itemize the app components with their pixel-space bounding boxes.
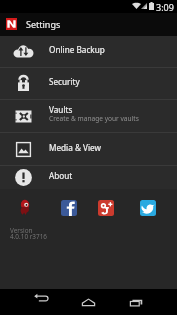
staticText: Security (49, 76, 80, 87)
staticText: Version (10, 226, 33, 235)
staticText: Settings (26, 18, 61, 30)
button[interactable]: Home (75, 289, 101, 315)
button[interactable]: Twitter (140, 200, 156, 216)
button[interactable]: Vaults (0, 100, 177, 132)
button[interactable]: Media & View (0, 133, 177, 165)
staticText: 3:09 (156, 1, 174, 13)
button[interactable]: Back (29, 289, 55, 315)
staticText: Online Backup (49, 44, 105, 55)
button[interactable]: Security (0, 68, 177, 99)
button[interactable]: Recents (123, 289, 149, 315)
staticText: Media & View (49, 142, 101, 153)
staticText: Vaults (49, 104, 73, 115)
button[interactable]: Online Backup (0, 36, 177, 67)
staticText: About (49, 170, 73, 181)
staticText: 4.0.10 r3716 (10, 232, 47, 241)
staticText: Create & manage your vaults (49, 114, 139, 123)
button[interactable]: Facebook (61, 200, 77, 216)
button[interactable]: Blog (19, 199, 30, 215)
button[interactable]: Settings (0, 13, 177, 36)
button[interactable]: About (0, 166, 177, 189)
button[interactable]: Google Plus (98, 200, 114, 216)
